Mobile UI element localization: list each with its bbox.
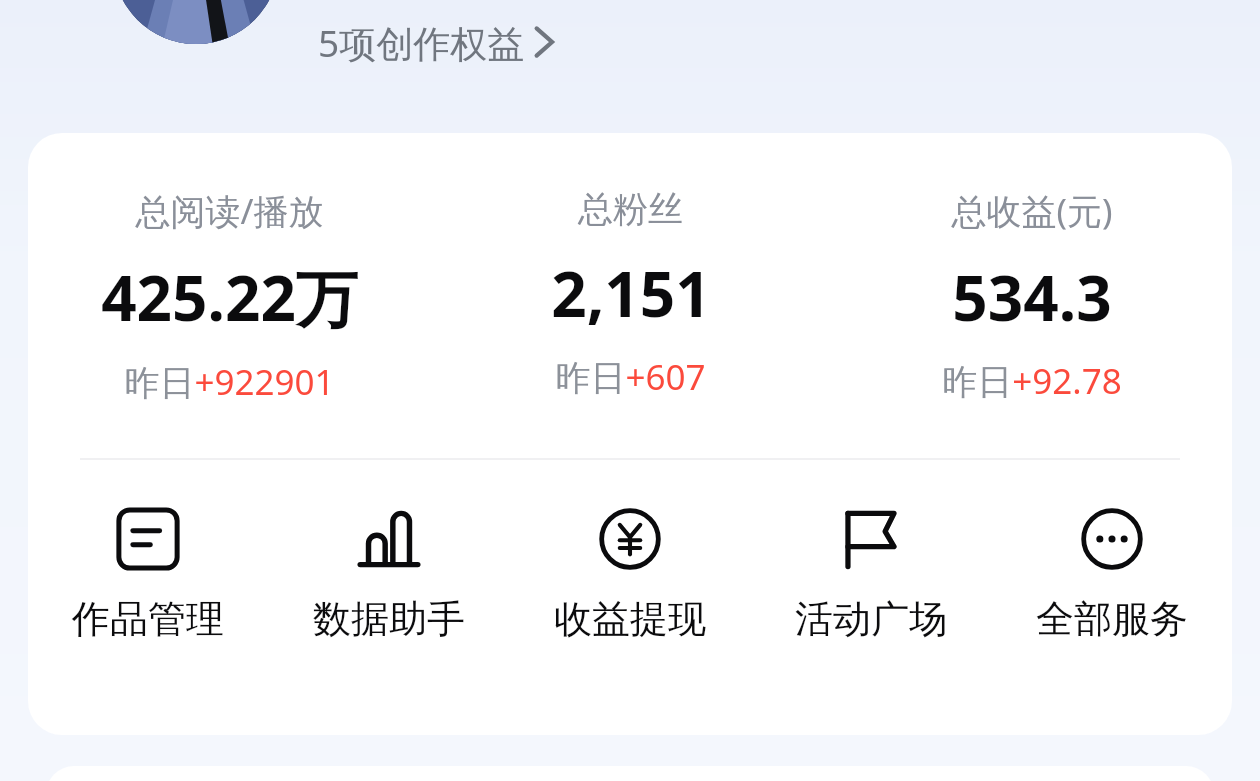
staticText: 总粉丝	[578, 187, 683, 231]
button[interactable]: 总收益(元)	[831, 181, 1232, 411]
button[interactable]: 全部服务	[991, 503, 1232, 647]
button[interactable]: 作品管理	[28, 503, 268, 647]
staticText: 昨日+922901	[124, 358, 335, 406]
staticText: 2,151	[551, 251, 711, 335]
staticText: 昨日+607	[555, 353, 706, 401]
staticText: 活动广场	[795, 595, 947, 643]
staticText: 作品管理	[72, 595, 224, 643]
button[interactable]: 收益提现	[509, 503, 750, 647]
staticText: 534.3	[952, 255, 1112, 339]
staticText: 总阅读/播放	[135, 187, 324, 235]
button[interactable]: 活动广场	[750, 503, 991, 647]
button[interactable]: 总阅读/播放	[28, 181, 430, 412]
staticText: 425.22万	[101, 255, 358, 340]
button[interactable]: 数据助手	[268, 503, 509, 647]
button[interactable]: Avatar	[113, 0, 279, 44]
staticText: 5项创作权益	[318, 17, 525, 68]
staticText: 昨日+92.78	[942, 357, 1122, 405]
staticText: 总收益(元)	[951, 187, 1113, 235]
staticText: 收益提现	[554, 595, 706, 643]
staticText: 全部服务	[1036, 595, 1188, 643]
button[interactable]: 总粉丝	[430, 181, 831, 407]
staticText: 数据助手	[313, 595, 465, 643]
button[interactable]: 5项创作权益	[318, 8, 556, 76]
